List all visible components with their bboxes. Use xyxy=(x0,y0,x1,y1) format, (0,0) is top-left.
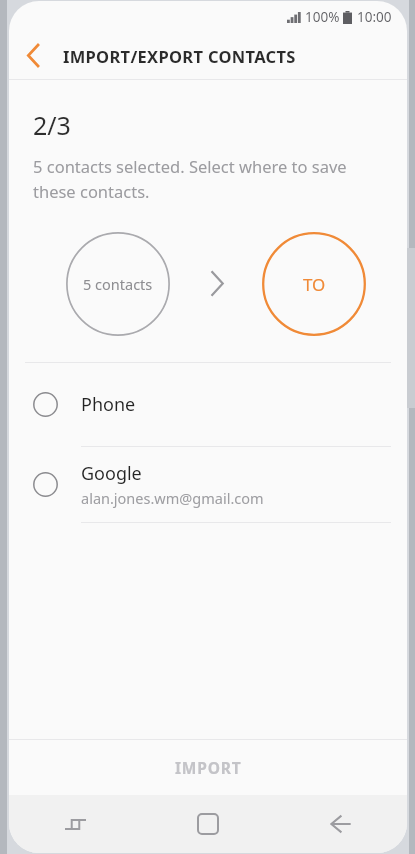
button[interactable]: Back xyxy=(274,795,407,853)
staticText: alan.jones.wm@gmail.com xyxy=(81,488,264,508)
button[interactable]: TO xyxy=(262,232,366,336)
button[interactable]: Home xyxy=(141,795,274,853)
staticText: IMPORT xyxy=(175,757,242,778)
staticText: IMPORT/EXPORT CONTACTS xyxy=(63,45,296,67)
staticText: 10:00 xyxy=(357,8,392,26)
staticText: 5 contacts xyxy=(83,274,153,294)
staticText: TO xyxy=(303,273,326,296)
button[interactable]: Google xyxy=(9,447,407,522)
button[interactable]: Recents xyxy=(9,795,141,853)
staticText: Google xyxy=(81,461,142,486)
staticText: Phone xyxy=(81,392,136,417)
button[interactable]: IMPORT xyxy=(9,740,407,795)
staticText: 5 contacts selected. Select where to sav… xyxy=(33,155,365,202)
staticText: 100% xyxy=(305,8,340,26)
staticText: 2/3 xyxy=(33,108,71,142)
button[interactable]: Back xyxy=(9,32,57,79)
button[interactable]: Phone xyxy=(9,363,407,446)
